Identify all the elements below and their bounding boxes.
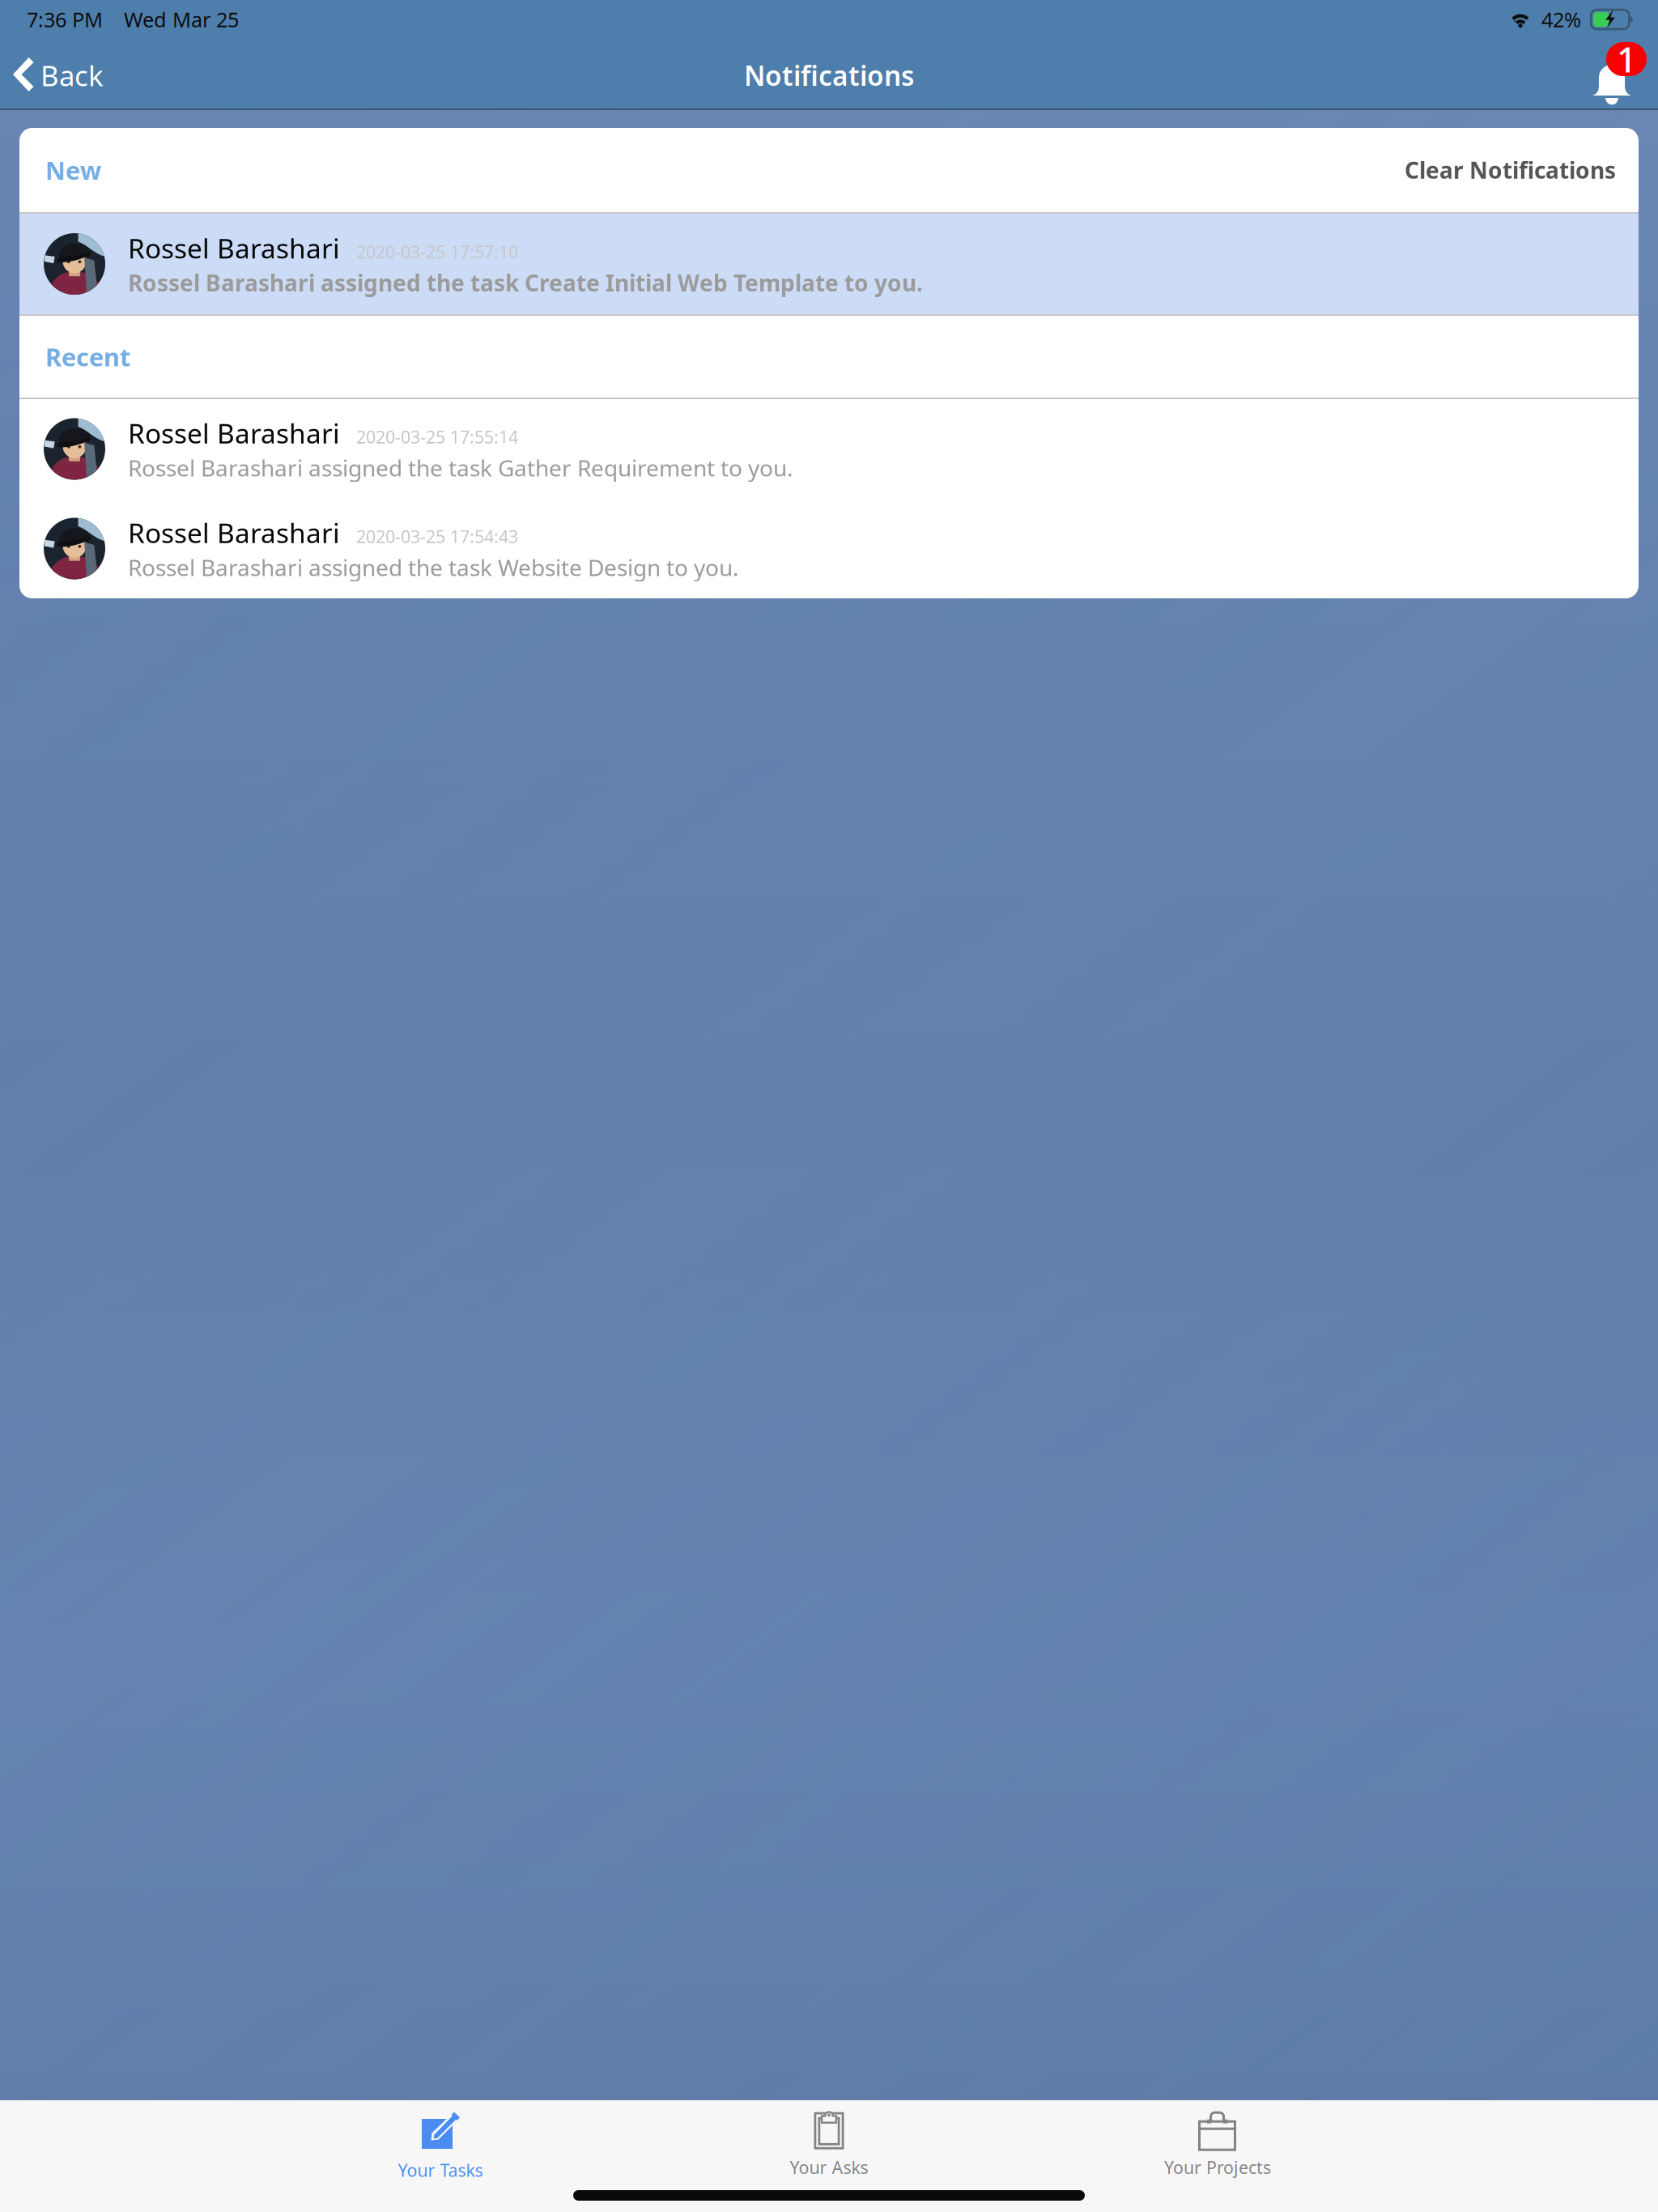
staticText: Rossel Barashari assigned the task Gathe…	[128, 453, 793, 483]
staticText: 2020-03-25 17:57:10	[356, 240, 518, 263]
button[interactable]: Rossel Barashari	[19, 499, 1639, 598]
staticText: Your Tasks	[398, 2159, 483, 2181]
button[interactable]: Back	[0, 43, 120, 108]
staticText: Rossel Barashari	[128, 515, 340, 551]
staticText: 7:36 PM	[27, 6, 103, 33]
staticText: Recent	[45, 340, 130, 373]
staticText: Notifications	[744, 57, 914, 93]
staticText: Rossel Barashari assigned the task Creat…	[128, 268, 923, 298]
button[interactable]: Rossel Barashari	[19, 214, 1639, 314]
button[interactable]: Your Asks	[635, 2112, 1023, 2193]
staticText: Rossel Barashari	[128, 230, 340, 266]
staticText: Your Projects	[1164, 2156, 1271, 2179]
button[interactable]: Rossel Barashari	[19, 399, 1639, 499]
staticText: Clear Notifications	[1405, 155, 1616, 185]
staticText: Wed Mar 25	[124, 6, 239, 33]
button[interactable]: Notifications	[1577, 42, 1647, 108]
button[interactable]: Your Projects	[1023, 2112, 1412, 2193]
staticText: 2020-03-25 17:55:14	[356, 425, 518, 448]
staticText: Your Asks	[790, 2156, 868, 2179]
staticText: 1	[1617, 36, 1636, 82]
staticText: New	[45, 154, 101, 186]
staticText: 42%	[1541, 6, 1581, 33]
button[interactable]: Your Tasks	[246, 2112, 635, 2193]
staticText: Back	[40, 57, 104, 94]
staticText: 2020-03-25 17:54:43	[356, 525, 518, 548]
staticText: Rossel Barashari	[128, 415, 340, 451]
staticText: Rossel Barashari assigned the task Websi…	[128, 552, 739, 582]
button[interactable]: Clear Notifications	[1398, 140, 1622, 200]
